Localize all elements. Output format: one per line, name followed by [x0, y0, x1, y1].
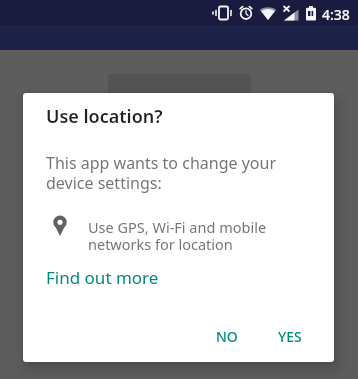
staticText: This app wants to change your device set…	[46, 152, 277, 193]
staticText: NO	[216, 327, 238, 346]
staticText: YES	[278, 327, 302, 346]
button[interactable]: YES	[266, 319, 314, 354]
button[interactable]: NO	[204, 319, 250, 354]
staticText: Use location?	[46, 104, 163, 129]
staticText: Find out more	[46, 266, 159, 289]
staticText: Use GPS, Wi-Fi and mobile networks for l…	[88, 217, 267, 254]
staticText: 4:38	[322, 5, 350, 24]
button[interactable]: Find out more	[39, 259, 166, 296]
